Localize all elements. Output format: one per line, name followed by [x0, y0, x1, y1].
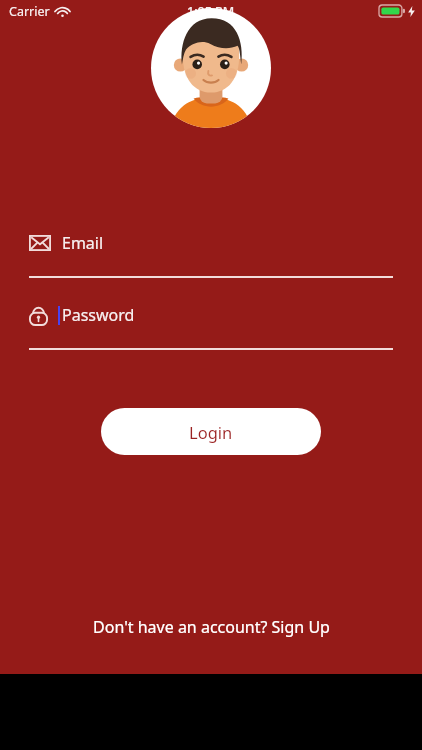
button[interactable]: Email: [29, 232, 393, 278]
button[interactable]: Login: [101, 408, 321, 455]
staticText: Carrier: [9, 3, 50, 20]
other: Email: [29, 235, 51, 251]
other: Battery charging: [379, 5, 405, 17]
staticText: Don't have an account? Sign Up: [93, 616, 330, 638]
other: Wi-Fi: [56, 7, 69, 17]
staticText: Password: [62, 304, 135, 326]
button[interactable]: Password: [29, 304, 393, 350]
staticText: Login: [189, 421, 233, 443]
button[interactable]: Don't have an account? Sign Up: [79, 610, 344, 644]
other: Password: [29, 304, 48, 326]
staticText: Email: [62, 232, 104, 254]
staticText: 1:05 PM: [187, 3, 235, 20]
